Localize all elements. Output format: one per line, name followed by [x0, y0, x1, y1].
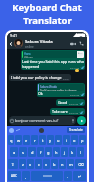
button[interactable]: Send — [77, 116, 86, 125]
staticText: , — [25, 174, 27, 179]
button[interactable]: Voice input — [16, 128, 20, 132]
staticText: ABC — [11, 174, 18, 178]
staticText: w — [17, 138, 21, 143]
staticText: @Hana — [24, 56, 33, 58]
staticText: Ok — [38, 91, 43, 96]
staticText: z — [22, 162, 24, 167]
button[interactable]: Settings — [39, 128, 44, 133]
button[interactable]: l — [77, 147, 84, 157]
button[interactable]: ABC — [8, 171, 21, 181]
button[interactable]: u — [55, 135, 62, 145]
staticText: 2:34 AM — [69, 111, 79, 114]
staticText: h — [55, 150, 58, 155]
staticText: m — [69, 162, 73, 167]
button[interactable]: . — [64, 171, 72, 181]
button[interactable] — [31, 171, 63, 181]
staticText: n — [61, 162, 64, 167]
staticText: b — [53, 162, 56, 167]
staticText: bonjour comment vas-tu? — [15, 118, 59, 123]
button[interactable]: n — [59, 159, 66, 169]
button[interactable]: c — [35, 159, 42, 169]
button[interactable]: Call — [77, 39, 86, 48]
button[interactable]: b — [51, 159, 58, 169]
button[interactable]: s — [19, 147, 27, 157]
staticText: 2:32 AM — [63, 77, 69, 80]
staticText: 2:31 AM — [70, 66, 80, 69]
button[interactable]: y — [47, 135, 54, 145]
staticText: j — [64, 150, 66, 155]
button[interactable]: o — [71, 135, 78, 145]
button[interactable]: v — [43, 159, 50, 169]
staticText: 2:33 AM — [70, 93, 80, 96]
staticText: 9:41 — [10, 33, 18, 38]
staticText: p — [81, 138, 84, 143]
staticText: Last time you Said this app runs what — [22, 59, 84, 64]
button[interactable]: e — [23, 135, 30, 145]
staticText: o — [73, 138, 76, 143]
staticText: . — [67, 174, 69, 179]
staticText: k — [71, 150, 74, 155]
button[interactable]: ⇧ — [8, 159, 18, 169]
button[interactable]: i — [63, 135, 70, 145]
staticText: v — [45, 162, 48, 167]
button[interactable]: , — [22, 171, 30, 181]
staticText: g — [47, 150, 50, 155]
staticText: Translator — [23, 14, 72, 27]
staticText: e — [25, 138, 28, 143]
button[interactable]: ↵ — [73, 171, 86, 181]
button[interactable]: k — [69, 147, 76, 157]
staticText: I told you our policy is change — [11, 75, 62, 80]
staticText: t — [42, 138, 44, 143]
staticText: q — [10, 138, 13, 143]
staticText: Sakura Vitada — [25, 39, 53, 45]
button[interactable]: ⌫ — [75, 159, 86, 169]
button[interactable]: h — [53, 147, 60, 157]
staticText: x — [29, 162, 32, 167]
staticText: d — [31, 150, 34, 155]
button[interactable]: f — [37, 147, 44, 157]
button[interactable]: j — [61, 147, 68, 157]
staticText: u — [57, 138, 60, 143]
staticText: s — [22, 150, 24, 155]
staticText: c — [38, 162, 40, 167]
staticText: a — [13, 150, 16, 155]
button[interactable]: p — [79, 135, 86, 145]
staticText: i — [66, 138, 68, 143]
staticText: online — [25, 45, 34, 49]
staticText: I told you our policy is change — [40, 89, 77, 91]
button[interactable]: t — [39, 135, 46, 145]
staticText: happened — [22, 64, 40, 69]
staticText: y — [49, 138, 52, 143]
button[interactable]: Emoji — [9, 128, 14, 133]
staticText: ⇧ — [11, 162, 15, 167]
staticText: ↵ — [78, 174, 82, 179]
button[interactable]: g — [45, 147, 52, 157]
staticText: Keyboard Chat — [12, 1, 82, 14]
staticText: Good — [58, 100, 68, 105]
button[interactable]: x — [27, 159, 34, 169]
button[interactable]: Back — [8, 41, 14, 47]
staticText: r — [34, 138, 36, 143]
button[interactable]: z — [19, 159, 26, 169]
button[interactable]: Translate — [67, 127, 85, 133]
staticText: ⌫ — [78, 162, 84, 167]
button[interactable]: m — [67, 159, 74, 169]
staticText: f — [40, 150, 42, 155]
button[interactable]: Video call — [68, 39, 77, 48]
button[interactable]: a — [10, 147, 18, 157]
staticText: Take care — [52, 109, 68, 114]
staticText: Translate — [69, 128, 83, 132]
button[interactable]: r — [31, 135, 38, 145]
staticText: l — [80, 150, 82, 155]
staticText: Hana — [24, 52, 31, 56]
button[interactable]: q — [8, 135, 14, 145]
staticText: 2:34 AM — [69, 102, 79, 105]
button[interactable]: w — [15, 135, 22, 145]
staticText: Sakura Vitada — [40, 85, 57, 89]
button[interactable]: d — [28, 147, 36, 157]
